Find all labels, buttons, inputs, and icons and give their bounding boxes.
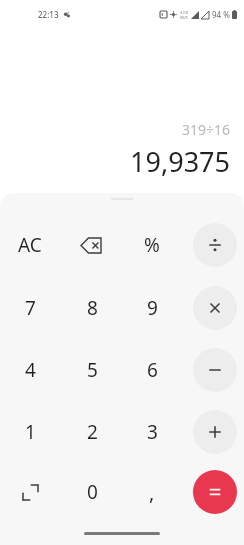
staticText: % [144,232,160,258]
button[interactable]: Equals [189,466,241,518]
staticText: 1 [25,419,36,445]
button[interactable]: 1 [4,406,56,458]
button[interactable]: Backspace [66,219,118,271]
button[interactable]: 0 [66,466,118,518]
button[interactable]: 4 [4,344,56,396]
button[interactable]: Add [189,406,241,458]
staticText: 5 [87,357,98,383]
button[interactable]: Multiply [189,282,241,334]
staticText: AC [18,232,42,258]
staticText: 22:13 [38,9,59,20]
staticText: 9 [147,295,158,321]
button[interactable]: 8 [66,282,118,334]
staticText: 4 [25,357,36,383]
staticText: 319÷16 [181,120,230,139]
staticText: , [149,479,155,506]
staticText: 7 [25,295,36,321]
button[interactable]: 2 [66,406,118,458]
button[interactable]: 7 [4,282,56,334]
button[interactable]: AC [4,219,56,271]
staticText: 0 [87,479,98,505]
button[interactable]: 5 [66,344,118,396]
staticText: 8 [87,295,98,321]
button[interactable]: , [126,466,178,518]
staticText: 2 [87,419,98,445]
staticText: KB/S [180,15,188,20]
button[interactable]: Expand [4,466,56,518]
button[interactable]: 9 [126,282,178,334]
button[interactable]: 6 [126,344,178,396]
staticText: 3 [147,419,158,445]
button[interactable]: Divide [189,219,241,271]
button[interactable]: % [126,219,178,271]
staticText: 94 % [212,9,230,20]
staticText: 3.00 [180,10,188,15]
button[interactable]: 3 [126,406,178,458]
staticText: 6 [147,357,158,383]
staticText: 19,9375 [130,143,230,180]
button[interactable]: Subtract [189,344,241,396]
